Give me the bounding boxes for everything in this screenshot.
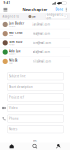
- staticText: mia@mail.com: [33, 32, 50, 35]
- staticText: bridgeset.com: [46, 13, 63, 20]
- staticText: Nils Ek: [9, 59, 17, 62]
- button[interactable]: Tom Ruiz: [0, 38, 70, 48]
- staticText: Assigned to: [2, 15, 19, 18]
- button[interactable]: Nils Ek: [0, 57, 70, 66]
- staticText: Save: [32, 139, 37, 142]
- staticText: Tom Ruiz: [9, 40, 22, 44]
- button[interactable]: Profile: [47, 142, 70, 150]
- staticText: Jan Bader: [9, 22, 24, 25]
- staticText: ×: [64, 15, 66, 18]
- staticText: Subject line: [9, 74, 26, 78]
- button[interactable]: Save: [0, 138, 70, 142]
- staticText: Studio: [9, 35, 13, 36]
- button[interactable]: Jan: [28, 14, 37, 19]
- staticText: Ada Lux: [9, 49, 20, 53]
- button[interactable]: Menu: [2, 6, 9, 13]
- button[interactable]: Home: [0, 142, 23, 150]
- button[interactable]: Mia Coste: [0, 29, 70, 38]
- staticText: Partner: [9, 44, 15, 46]
- staticText: ada@mail.com: [33, 50, 50, 54]
- staticText: jan@mail.com: [33, 23, 50, 26]
- button[interactable]: Search: [23, 142, 47, 150]
- staticText: Designer: [9, 25, 16, 27]
- staticText: Support: [9, 53, 15, 55]
- button[interactable]: Jan Bader: [0, 20, 70, 29]
- button[interactable]: Ada Lux: [0, 48, 70, 57]
- staticText: Phone: [9, 117, 19, 120]
- staticText: Video: [9, 106, 18, 110]
- staticText: 9:41: [4, 1, 11, 5]
- staticText: Short description: [9, 85, 33, 89]
- staticText: Sales: [9, 62, 13, 64]
- staticText: tom@mail.com: [33, 41, 51, 45]
- button[interactable]: bridgeset.com: [45, 14, 68, 19]
- staticText: Notes: [9, 127, 17, 131]
- button[interactable]: More options: [65, 6, 68, 13]
- staticText: Jan: [32, 15, 36, 18]
- staticText: Project ref: [9, 96, 24, 99]
- button[interactable]: Done: [55, 6, 65, 13]
- staticText: nils@mail.com: [33, 60, 51, 63]
- staticText: Mia Coste: [9, 31, 23, 34]
- staticText: Done: [56, 8, 64, 11]
- staticText: New chapter: [22, 7, 47, 12]
